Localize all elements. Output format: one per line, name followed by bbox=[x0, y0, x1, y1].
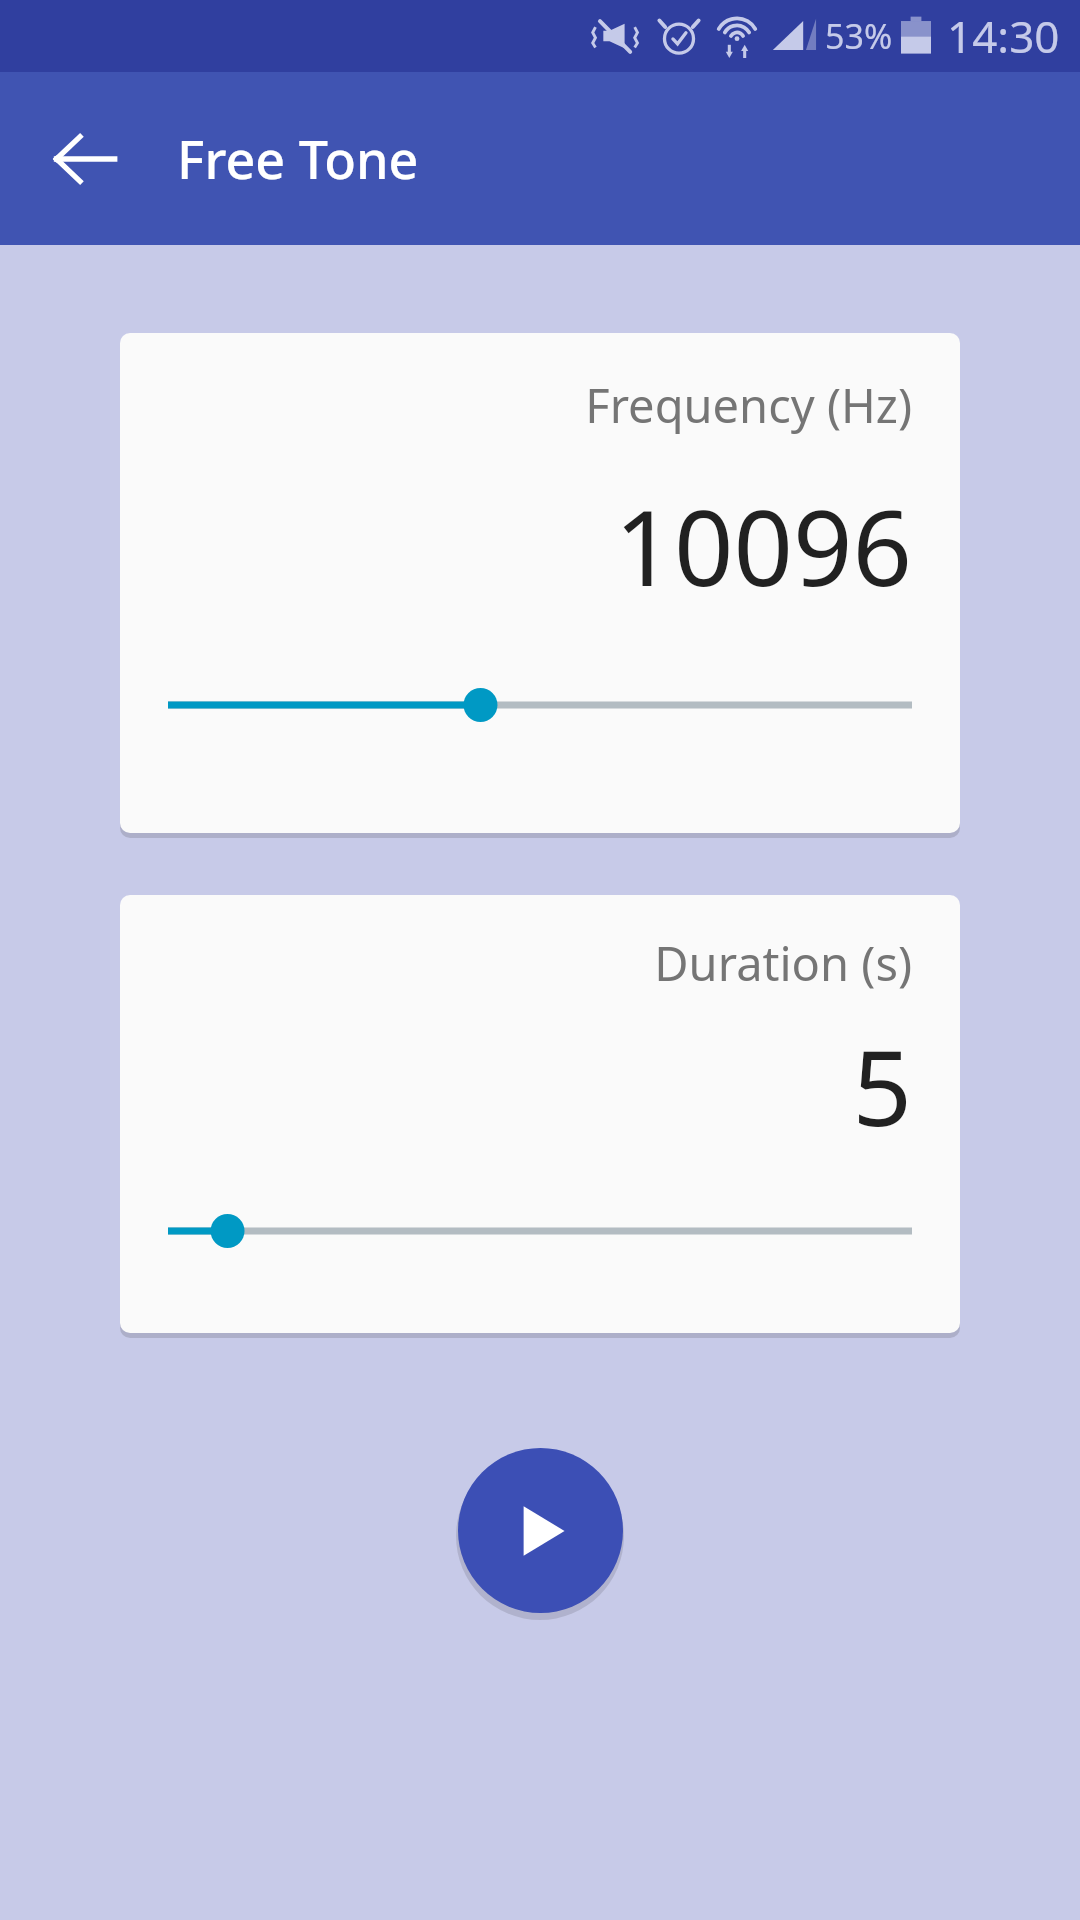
staticText: Duration (s) bbox=[168, 931, 912, 995]
staticText: 14:30 bbox=[947, 6, 1060, 66]
button[interactable]: Frequency (Hz) bbox=[120, 333, 960, 833]
button[interactable] bbox=[168, 677, 912, 733]
staticText: 53% bbox=[825, 13, 893, 59]
staticText: 5 bbox=[168, 1015, 912, 1157]
button[interactable]: Back bbox=[30, 104, 140, 214]
button[interactable]: Play bbox=[458, 1448, 623, 1613]
staticText: Free Tone bbox=[177, 123, 419, 194]
button[interactable] bbox=[168, 1203, 912, 1259]
button[interactable]: Duration (s) bbox=[120, 895, 960, 1333]
staticText: Frequency (Hz) bbox=[168, 373, 912, 437]
staticText: 10096 bbox=[168, 475, 912, 617]
